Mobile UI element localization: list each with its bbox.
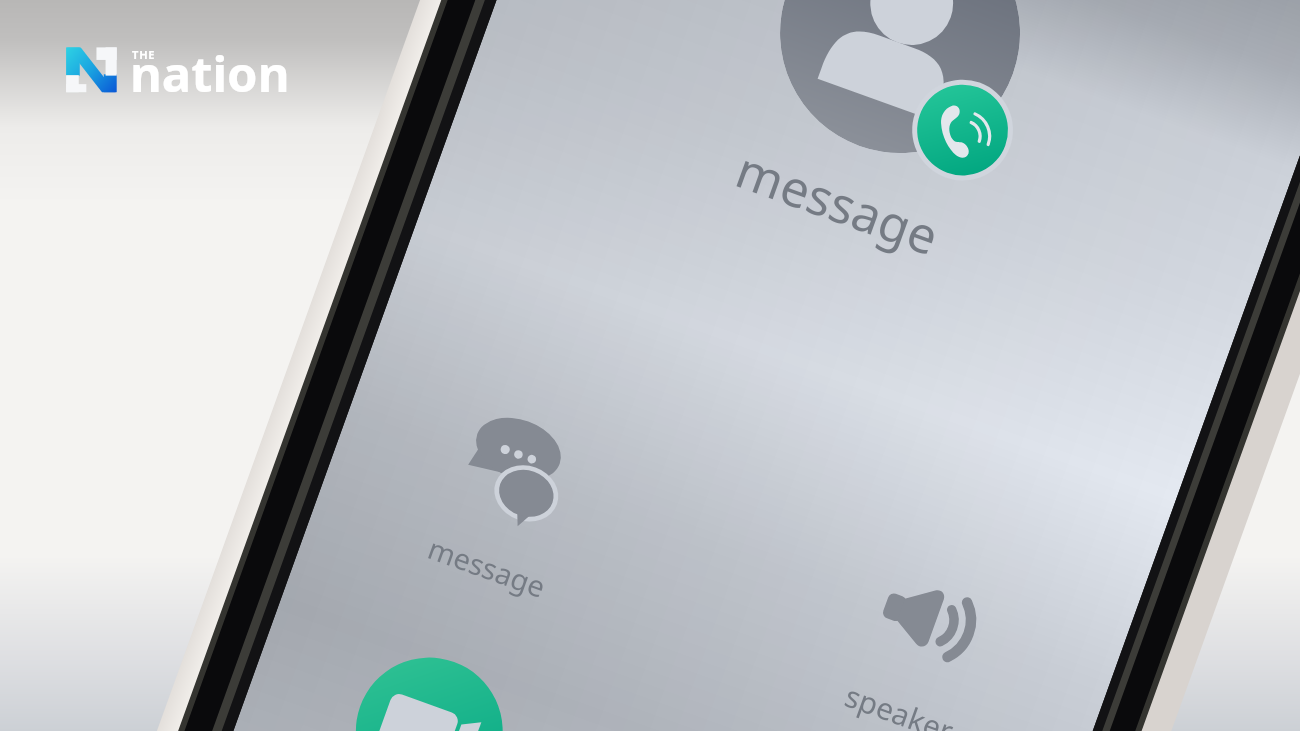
other: Phone call screen [0, 0, 1300, 731]
